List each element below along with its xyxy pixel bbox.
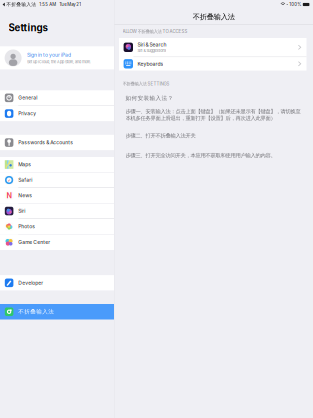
staticText: Privacy <box>18 111 36 117</box>
staticText: Passwords & Accounts <box>18 140 73 146</box>
staticText: 步骤一、安装输入法：点击上面【键盘】（如果还未显示有【键盘】，请切换至本机多任务… <box>125 108 300 121</box>
button[interactable]: Keyboards <box>119 57 306 70</box>
staticText: 步骤三、打开完全访问开关，本应用不获取和使用用户输入的内容。 <box>125 152 275 159</box>
button[interactable]: Passwords & Accounts <box>0 135 114 150</box>
staticText: 1:55 AM <box>36 2 59 7</box>
button[interactable]: 不折叠输入法 <box>2 1 36 7</box>
staticText: General <box>18 95 37 101</box>
staticText: Tue May 21 <box>59 2 81 7</box>
staticText: Maps <box>18 161 31 167</box>
staticText: Game Center <box>18 239 50 245</box>
staticText: ALLOW 不折叠输入法 TO ACCESS <box>122 29 187 34</box>
button[interactable]: Game Center <box>0 234 114 250</box>
staticText: 如何安装输入法？ <box>125 94 173 102</box>
staticText: 不折叠输入法 <box>6 1 36 7</box>
staticText: Siri <box>18 208 25 214</box>
staticText: Siri & Suggestions <box>137 48 166 53</box>
button[interactable]: N <box>0 188 114 203</box>
button[interactable]: Sign in to your iPad <box>0 46 114 70</box>
staticText: Safari <box>18 177 32 183</box>
staticText: Photos <box>18 223 35 229</box>
button[interactable]: Siri <box>0 203 114 219</box>
staticText: Set up iCloud, the App Store, and more. <box>27 60 91 64</box>
staticText: Developer <box>18 280 43 286</box>
staticText: Keyboards <box>137 61 163 67</box>
staticText: 不折叠输入法 SETTINGS <box>122 81 169 86</box>
staticText: Siri & Search <box>137 42 166 48</box>
button[interactable]: General <box>0 90 114 105</box>
staticText: 100% <box>289 2 301 7</box>
staticText: 步骤二、打开不折叠输入法开关 <box>125 132 195 139</box>
button[interactable]: Safari <box>0 172 114 188</box>
staticText: 不折叠输入法 <box>18 308 54 315</box>
staticText: 不折叠输入法 <box>193 12 235 21</box>
button[interactable]: Privacy <box>0 106 114 121</box>
button[interactable]: Siri & Search <box>119 38 306 57</box>
staticText: Settings <box>8 22 47 34</box>
button[interactable]: 不折叠输入法 <box>0 304 114 319</box>
button[interactable]: Developer <box>0 275 114 291</box>
button[interactable]: Photos <box>0 219 114 234</box>
staticText: News <box>18 192 32 198</box>
staticText: N <box>7 191 12 200</box>
staticText: Sign in to your iPad <box>27 52 71 58</box>
button[interactable]: Maps <box>0 157 114 172</box>
